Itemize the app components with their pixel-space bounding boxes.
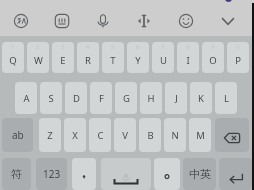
staticText: L (224, 92, 229, 105)
button[interactable]: Enter (219, 158, 252, 190)
staticText: X (72, 129, 78, 142)
staticText: N (171, 129, 179, 142)
staticText: 中英 (189, 167, 211, 181)
button[interactable]: 6 (127, 42, 149, 73)
staticText: 符 (11, 167, 22, 181)
button[interactable]: M (189, 118, 211, 152)
staticText: Q (9, 54, 17, 67)
staticText: V (122, 129, 128, 142)
button[interactable]: 0 (227, 42, 249, 73)
button[interactable]: S (40, 82, 62, 114)
button[interactable]: X (64, 118, 86, 152)
staticText: 8 (186, 43, 190, 51)
button[interactable]: Z (39, 118, 61, 152)
button[interactable]: Emoji (165, 6, 207, 36)
staticText: H (147, 92, 155, 105)
button[interactable]: V (114, 118, 136, 152)
staticText: W (34, 54, 43, 67)
staticText: F (99, 92, 104, 105)
button[interactable]: 9 (202, 42, 224, 73)
button[interactable]: H (140, 82, 162, 114)
button[interactable]: L (215, 82, 237, 114)
button[interactable]: Comma (72, 158, 96, 190)
staticText: B (147, 129, 154, 142)
staticText: 5 (111, 43, 115, 51)
button[interactable]: 中英 (183, 158, 216, 190)
button[interactable]: N (164, 118, 186, 152)
staticText: M (196, 129, 205, 142)
button[interactable]: K (190, 82, 212, 114)
staticText: 0 (236, 43, 240, 51)
staticText: 9 (211, 43, 215, 51)
button[interactable]: 4 (77, 42, 99, 73)
staticText: C (97, 129, 104, 142)
button[interactable]: Move cursor (123, 6, 165, 36)
button[interactable]: 7 (152, 42, 174, 73)
staticText: U (160, 54, 167, 67)
button[interactable]: 5 (102, 42, 124, 73)
button[interactable]: Clipboard (41, 6, 82, 36)
button[interactable]: J (165, 82, 187, 114)
button[interactable]: G (115, 82, 137, 114)
button[interactable]: F (90, 82, 112, 114)
button[interactable]: Hide keyboard (207, 6, 249, 36)
staticText: A (23, 92, 30, 105)
staticText: D (73, 92, 80, 105)
button[interactable]: 2 (27, 42, 49, 73)
staticText: 123 (43, 167, 61, 181)
button[interactable]: 3 (52, 42, 74, 73)
button[interactable]: Backspace (215, 118, 249, 152)
staticText: P (235, 54, 241, 67)
staticText: O (209, 54, 217, 67)
staticText: J (175, 92, 178, 105)
staticText: 6 (136, 43, 140, 51)
staticText: Z (47, 129, 53, 142)
button[interactable]: 1 (2, 42, 24, 73)
staticText: 3 (61, 43, 65, 51)
staticText: I (186, 54, 190, 67)
staticText: S (48, 92, 54, 105)
staticText: 2 (36, 43, 40, 51)
staticText: 1 (11, 43, 15, 51)
button[interactable]: A (15, 82, 37, 114)
button[interactable]: ab (2, 118, 33, 152)
button[interactable]: D (65, 82, 87, 114)
button[interactable]: C (89, 118, 111, 152)
staticText: 7 (161, 43, 165, 51)
staticText: 4 (86, 43, 90, 51)
staticText: E (60, 54, 66, 67)
button[interactable]: B (139, 118, 161, 152)
staticText: T (110, 54, 116, 67)
button[interactable]: Voice input (82, 6, 123, 36)
staticText: ab (12, 128, 24, 142)
staticText: G (123, 92, 130, 105)
staticText: Y (135, 54, 141, 67)
button[interactable]: 符 (2, 158, 31, 190)
staticText: R (85, 54, 91, 67)
button[interactable]: Translate (0, 6, 41, 36)
button[interactable]: Space (101, 158, 151, 190)
button[interactable]: Period (154, 158, 180, 190)
button[interactable]: 123 (36, 158, 67, 190)
button[interactable]: 8 (177, 42, 199, 73)
staticText: K (198, 92, 204, 105)
